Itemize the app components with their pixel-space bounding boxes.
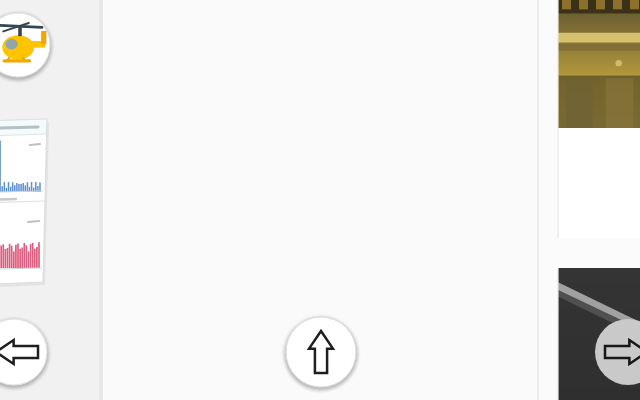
button[interactable]: Up: [286, 317, 356, 387]
button[interactable]: Helicopter: [0, 13, 50, 77]
button[interactable]: Gallery item: [558, 268, 640, 400]
button[interactable]: Gallery item: [558, 0, 640, 238]
button[interactable]: Analytics card: [0, 119, 96, 287]
button[interactable]: Previous: [0, 319, 47, 385]
button[interactable]: Next: [595, 319, 640, 385]
